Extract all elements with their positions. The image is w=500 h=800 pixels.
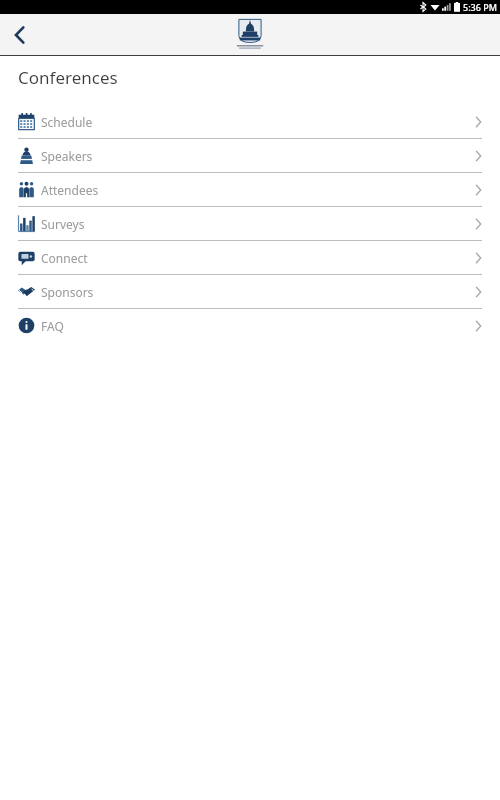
staticText: Sponsors — [41, 284, 94, 300]
staticText: Speakers — [41, 148, 93, 164]
staticText: Connect — [41, 250, 88, 266]
button[interactable]: Back — [0, 15, 40, 55]
button[interactable]: Schedule — [0, 105, 500, 138]
staticText: 5:36 PM — [463, 1, 497, 13]
staticText: Attendees — [41, 182, 99, 198]
button[interactable]: Speakers — [0, 139, 500, 172]
button[interactable]: Sponsors — [0, 275, 500, 308]
staticText: Schedule — [41, 114, 93, 130]
staticText: Conferences — [18, 66, 118, 89]
button[interactable]: FAQ — [0, 309, 500, 342]
button[interactable]: Attendees — [0, 173, 500, 206]
staticText: FAQ — [41, 318, 64, 334]
other: Logo — [235, 18, 265, 52]
staticText: Surveys — [41, 216, 85, 232]
button[interactable]: Connect — [0, 241, 500, 274]
button[interactable]: Surveys — [0, 207, 500, 240]
